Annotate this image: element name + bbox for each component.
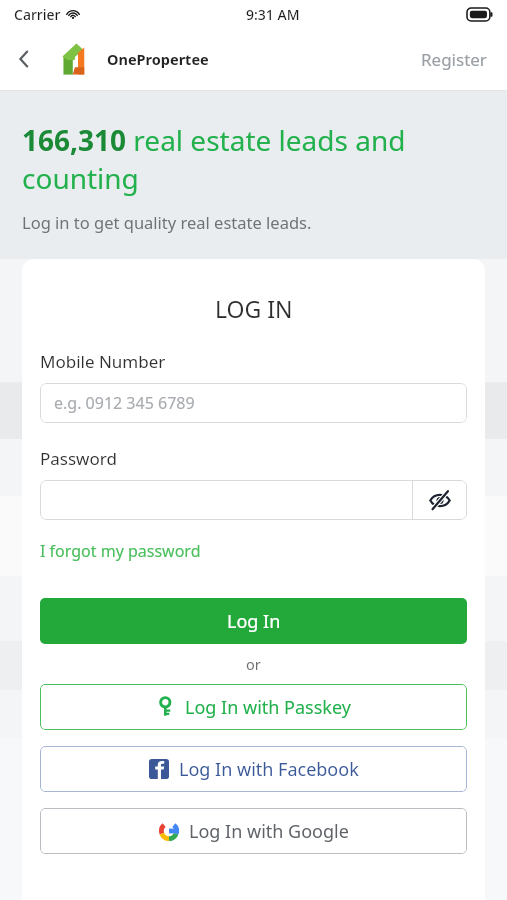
staticText: Mobile Number: [40, 350, 166, 373]
staticText: Log In with Passkey: [185, 695, 351, 720]
staticText: or: [246, 654, 261, 674]
staticText: Log In with Google: [189, 819, 349, 844]
button[interactable]: Show password: [413, 480, 467, 520]
staticText: 9:31 AM: [246, 5, 300, 24]
staticText: OnePropertee: [107, 49, 209, 69]
staticText: Log In with Facebook: [179, 757, 359, 782]
staticText: Carrier: [14, 5, 61, 24]
button[interactable]: Log In with Facebook: [40, 746, 467, 792]
button[interactable]: [40, 480, 412, 520]
staticText: Log In: [227, 609, 281, 634]
staticText: 166,310 real estate leads and counting: [22, 121, 485, 197]
button[interactable]: I forgot my password: [40, 536, 201, 566]
staticText: Password: [40, 447, 117, 470]
staticText: Log in to get quality real estate leads.: [22, 211, 312, 233]
staticText: LOG IN: [215, 293, 293, 324]
button[interactable]: Log In: [40, 598, 467, 644]
button[interactable]: Log In with Passkey: [40, 684, 467, 730]
button[interactable]: e.g. 0912 345 6789: [40, 383, 467, 423]
staticText: Register: [421, 48, 487, 71]
staticText: I forgot my password: [40, 540, 201, 562]
button[interactable]: Log In with Google: [40, 808, 467, 854]
button[interactable]: Back: [0, 35, 48, 83]
staticText: e.g. 0912 345 6789: [54, 392, 195, 414]
button[interactable]: Register: [401, 36, 507, 83]
